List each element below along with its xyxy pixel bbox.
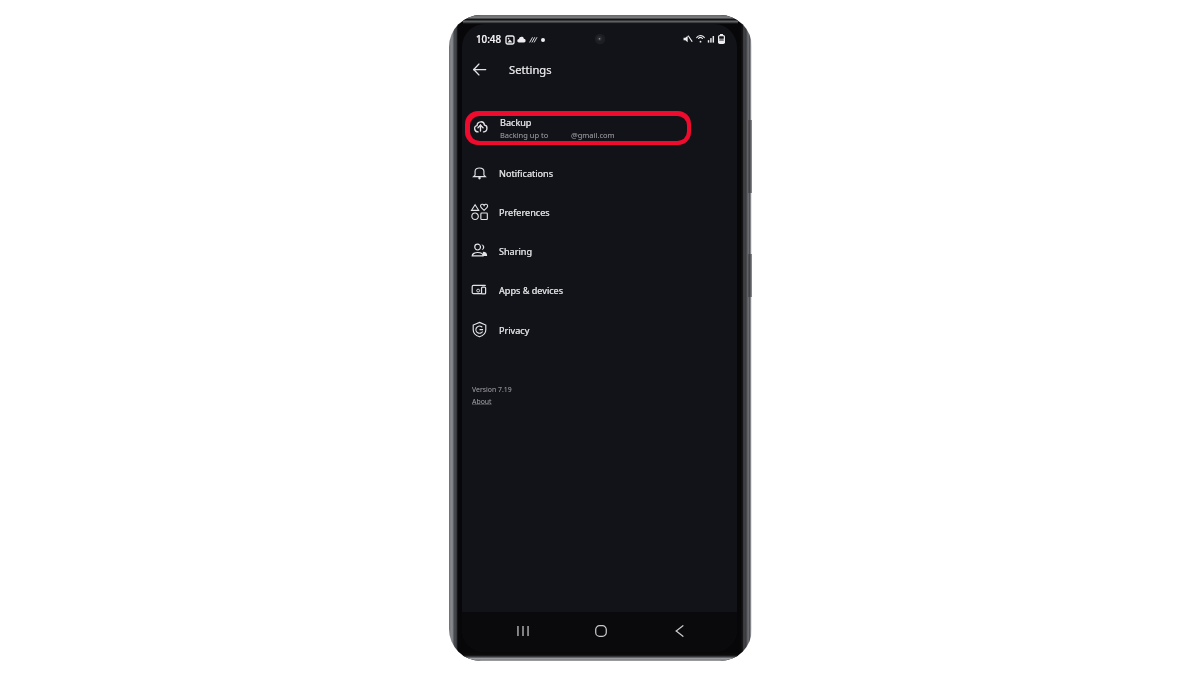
- staticText: @gmail.com: [571, 130, 615, 140]
- button[interactable]: Back: [468, 58, 491, 81]
- staticText: 10:48: [476, 33, 502, 46]
- staticText: Backing up to: [500, 130, 549, 140]
- button[interactable]: Backup: [465, 111, 691, 145]
- button[interactable]: Preferences: [462, 192, 737, 231]
- staticText: Notifications: [499, 167, 554, 179]
- button[interactable]: Back: [664, 610, 695, 651]
- staticText: Preferences: [499, 206, 550, 218]
- button[interactable]: Privacy: [462, 310, 737, 349]
- button[interactable]: Apps & devices: [462, 270, 737, 309]
- staticText: Privacy: [499, 324, 530, 336]
- button[interactable]: Notifications: [462, 153, 737, 192]
- staticText: Apps & devices: [499, 284, 564, 296]
- staticText: Version 7.19: [472, 385, 512, 394]
- staticText: Settings: [509, 62, 552, 77]
- button[interactable]: About: [472, 397, 492, 406]
- button[interactable]: Home: [585, 610, 617, 651]
- staticText: Sharing: [499, 245, 533, 257]
- button[interactable]: Recent apps: [507, 610, 538, 651]
- staticText: Backup: [500, 116, 532, 128]
- button[interactable]: Sharing: [462, 231, 737, 270]
